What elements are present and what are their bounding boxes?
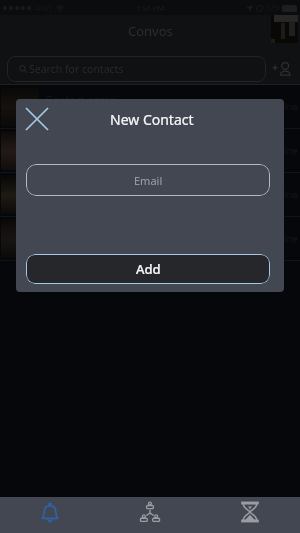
staticText: Contact name <box>46 93 115 107</box>
button[interactable]: History <box>200 497 300 533</box>
button[interactable]: Profile <box>271 15 298 43</box>
staticText: Convos <box>128 22 173 40</box>
staticText: online <box>270 144 298 157</box>
button[interactable]: Email <box>26 164 270 196</box>
staticText: online <box>270 232 298 245</box>
button[interactable]: Search for contacts <box>7 56 266 82</box>
button[interactable]: Notifications <box>0 497 100 533</box>
staticText: message preview <box>46 153 119 165</box>
button[interactable]: Add contact <box>270 56 296 82</box>
staticText: message preview <box>46 109 119 121</box>
staticText: Search for contacts <box>29 62 124 76</box>
staticText: Add <box>136 260 161 278</box>
staticText: 1:56 PM <box>136 3 165 13</box>
button[interactable]: Add <box>26 254 270 284</box>
button[interactable]: Network <box>100 497 200 533</box>
staticText: online <box>270 100 298 113</box>
staticText: online <box>270 188 298 201</box>
button[interactable]: Contact name <box>0 173 300 216</box>
button[interactable]: Contact name <box>0 129 300 172</box>
button[interactable]: Close <box>21 103 53 135</box>
staticText: New Contact <box>110 110 194 129</box>
staticText: Email <box>134 173 163 188</box>
button[interactable]: Contact name <box>0 217 300 260</box>
button[interactable]: Contact name <box>0 85 300 128</box>
